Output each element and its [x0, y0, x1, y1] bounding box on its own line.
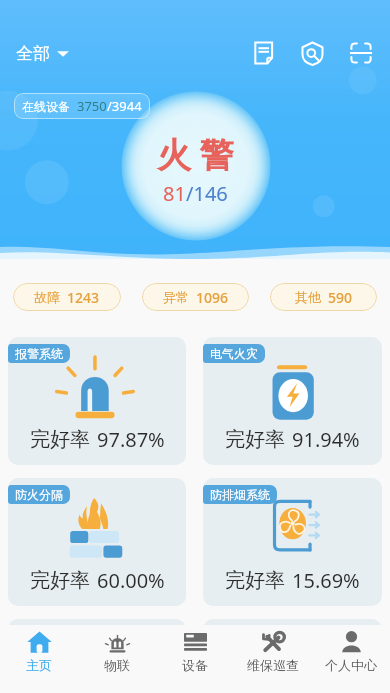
staticText: 1243	[67, 288, 100, 307]
button[interactable]: 无火系统	[8, 619, 186, 693]
button[interactable]: Notes	[244, 34, 282, 72]
staticText: 完好率	[225, 427, 285, 452]
staticText: 电气火灾	[210, 346, 258, 361]
staticText: 完好率	[225, 655, 285, 680]
staticText: 75.00%	[292, 654, 360, 681]
staticText: 完好率	[225, 568, 285, 593]
button[interactable]: 个人中心	[312, 625, 390, 693]
staticText: 故障	[34, 289, 60, 305]
staticText: 设备	[182, 657, 208, 673]
button[interactable]: 设备	[156, 625, 234, 693]
staticText: 防火分隔	[15, 487, 63, 502]
button[interactable]: 防火分隔	[8, 478, 186, 606]
staticText: 完好率	[30, 427, 90, 452]
staticText: 97.87%	[97, 426, 165, 453]
staticText: 其他	[295, 289, 321, 305]
staticText: 主页	[26, 657, 52, 673]
staticText: 91.94%	[292, 426, 360, 453]
button[interactable]: Inspect	[293, 34, 331, 72]
staticText: 15.69%	[292, 567, 360, 594]
staticText: 590	[328, 288, 353, 307]
staticText: 维保巡查	[247, 657, 299, 673]
staticText: 火 警	[157, 131, 234, 177]
staticText: 防排烟系统	[210, 487, 270, 502]
staticText: 81	[163, 180, 186, 207]
staticText: 60.00%	[97, 567, 165, 594]
staticText: 物联	[104, 657, 130, 673]
staticText: /146	[186, 180, 228, 207]
button[interactable]: 主页	[0, 625, 78, 693]
button[interactable]: 在线设备	[14, 93, 150, 119]
staticText: 1096	[196, 288, 229, 307]
staticText: /3944	[107, 97, 142, 115]
button[interactable]: 全部	[14, 37, 71, 70]
staticText: 全部	[16, 43, 50, 64]
staticText: 无火系统	[15, 628, 63, 643]
button[interactable]: 气体系统	[203, 619, 382, 693]
staticText: 异常	[163, 289, 189, 305]
button[interactable]: 物联	[78, 625, 156, 693]
staticText: 报警系统	[15, 346, 63, 361]
staticText: 完好率	[30, 655, 90, 680]
button[interactable]: 异常	[142, 283, 249, 311]
button[interactable]: 报警系统	[8, 337, 186, 465]
button[interactable]: 防排烟系统	[203, 478, 382, 606]
button[interactable]: 电气火灾	[203, 337, 382, 465]
staticText: 个人中心	[325, 657, 377, 673]
staticText: 在线设备	[22, 99, 70, 114]
staticText: 完好率	[30, 568, 90, 593]
button[interactable]: 故障	[13, 283, 121, 311]
button[interactable]: 其他	[270, 283, 377, 311]
button[interactable]: 维保巡查	[234, 625, 312, 693]
button[interactable]: Scan	[342, 34, 380, 72]
staticText: 3750	[77, 97, 107, 115]
staticText: 88.00%	[97, 654, 165, 681]
